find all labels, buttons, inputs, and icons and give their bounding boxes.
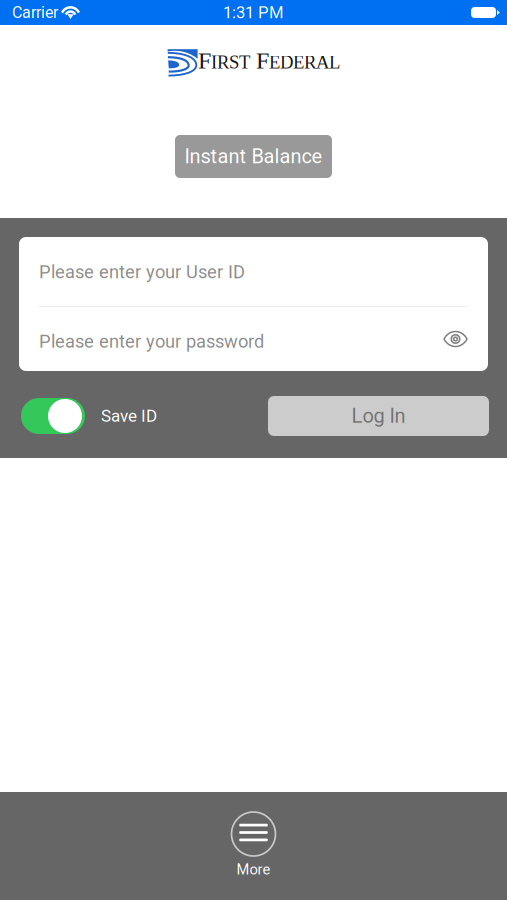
button[interactable]: More	[198, 792, 308, 878]
button[interactable]: Show password	[433, 323, 471, 354]
button[interactable]: Log In	[268, 396, 489, 436]
staticText: Instant Balance	[184, 145, 322, 168]
button[interactable]: Save ID	[21, 398, 157, 434]
staticText: F	[198, 47, 211, 74]
staticText: Please enter your User ID	[39, 261, 245, 283]
staticText: IRST	[211, 52, 250, 73]
staticText: Log In	[351, 404, 405, 428]
staticText: Please enter your password	[39, 331, 264, 352]
staticText: Carrier	[12, 3, 58, 22]
staticText: More	[236, 861, 270, 878]
staticText: Save ID	[101, 406, 157, 426]
button[interactable]: Instant Balance	[175, 135, 332, 178]
staticText: 1:31 PM	[223, 3, 284, 22]
staticText: F	[250, 47, 269, 74]
staticText: EDERAL	[269, 52, 340, 73]
